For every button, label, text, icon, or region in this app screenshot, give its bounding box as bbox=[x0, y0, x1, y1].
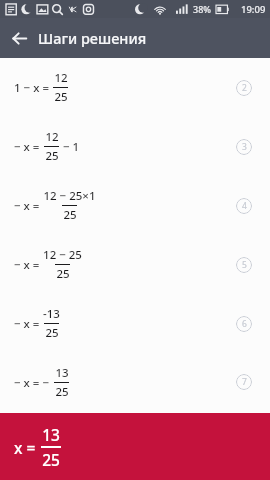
staticText: 25 bbox=[42, 449, 60, 470]
staticText: 3 bbox=[242, 141, 247, 153]
button[interactable]: − x = bbox=[0, 294, 270, 353]
staticText: 6 bbox=[242, 318, 247, 330]
staticText: 4 bbox=[242, 200, 247, 212]
staticText: 2 bbox=[242, 82, 247, 94]
staticText: 19:09 bbox=[241, 3, 266, 16]
staticText: − x = bbox=[14, 316, 43, 332]
staticText: x = bbox=[14, 437, 40, 458]
button[interactable]: x = bbox=[0, 413, 270, 480]
staticText: − x = bbox=[14, 139, 43, 155]
staticText: 25 bbox=[56, 266, 70, 282]
staticText: 25 bbox=[54, 89, 68, 105]
staticText: 25 bbox=[63, 207, 77, 223]
staticText: 1 − x = bbox=[14, 80, 52, 96]
staticText: 12 bbox=[45, 129, 59, 145]
button[interactable]: 5 bbox=[236, 257, 252, 273]
staticText: − 1 bbox=[60, 139, 80, 155]
staticText: 5 bbox=[242, 259, 247, 271]
staticText: 38% bbox=[193, 3, 211, 15]
staticText: 13 bbox=[55, 365, 69, 381]
button[interactable]: − x = − bbox=[0, 353, 270, 411]
button[interactable]: − x = bbox=[0, 235, 270, 294]
button[interactable]: 3 bbox=[236, 139, 252, 155]
staticText: 25 bbox=[45, 148, 59, 164]
button[interactable]: − x = bbox=[0, 176, 270, 235]
button[interactable]: Back bbox=[0, 18, 38, 58]
button[interactable]: 1 − x = bbox=[0, 58, 270, 117]
staticText: − x = bbox=[14, 198, 43, 214]
staticText: Шаги решения bbox=[38, 28, 147, 48]
button[interactable]: 4 bbox=[236, 198, 252, 214]
button[interactable]: − x = bbox=[0, 117, 270, 176]
staticText: 12 − 25×1 bbox=[43, 188, 96, 204]
button[interactable]: 2 bbox=[236, 80, 252, 96]
staticText: − x = bbox=[14, 257, 43, 273]
staticText: 13 bbox=[42, 424, 60, 445]
staticText: 25 bbox=[45, 325, 59, 341]
staticText: 7 bbox=[242, 376, 247, 388]
staticText: 12 bbox=[54, 70, 68, 86]
staticText: 25 bbox=[55, 384, 69, 400]
button[interactable]: 7 bbox=[236, 374, 252, 390]
button[interactable]: 6 bbox=[236, 316, 252, 332]
staticText: -13 bbox=[43, 306, 60, 322]
staticText: 12 − 25 bbox=[43, 247, 82, 263]
staticText: − x = − bbox=[14, 375, 53, 391]
